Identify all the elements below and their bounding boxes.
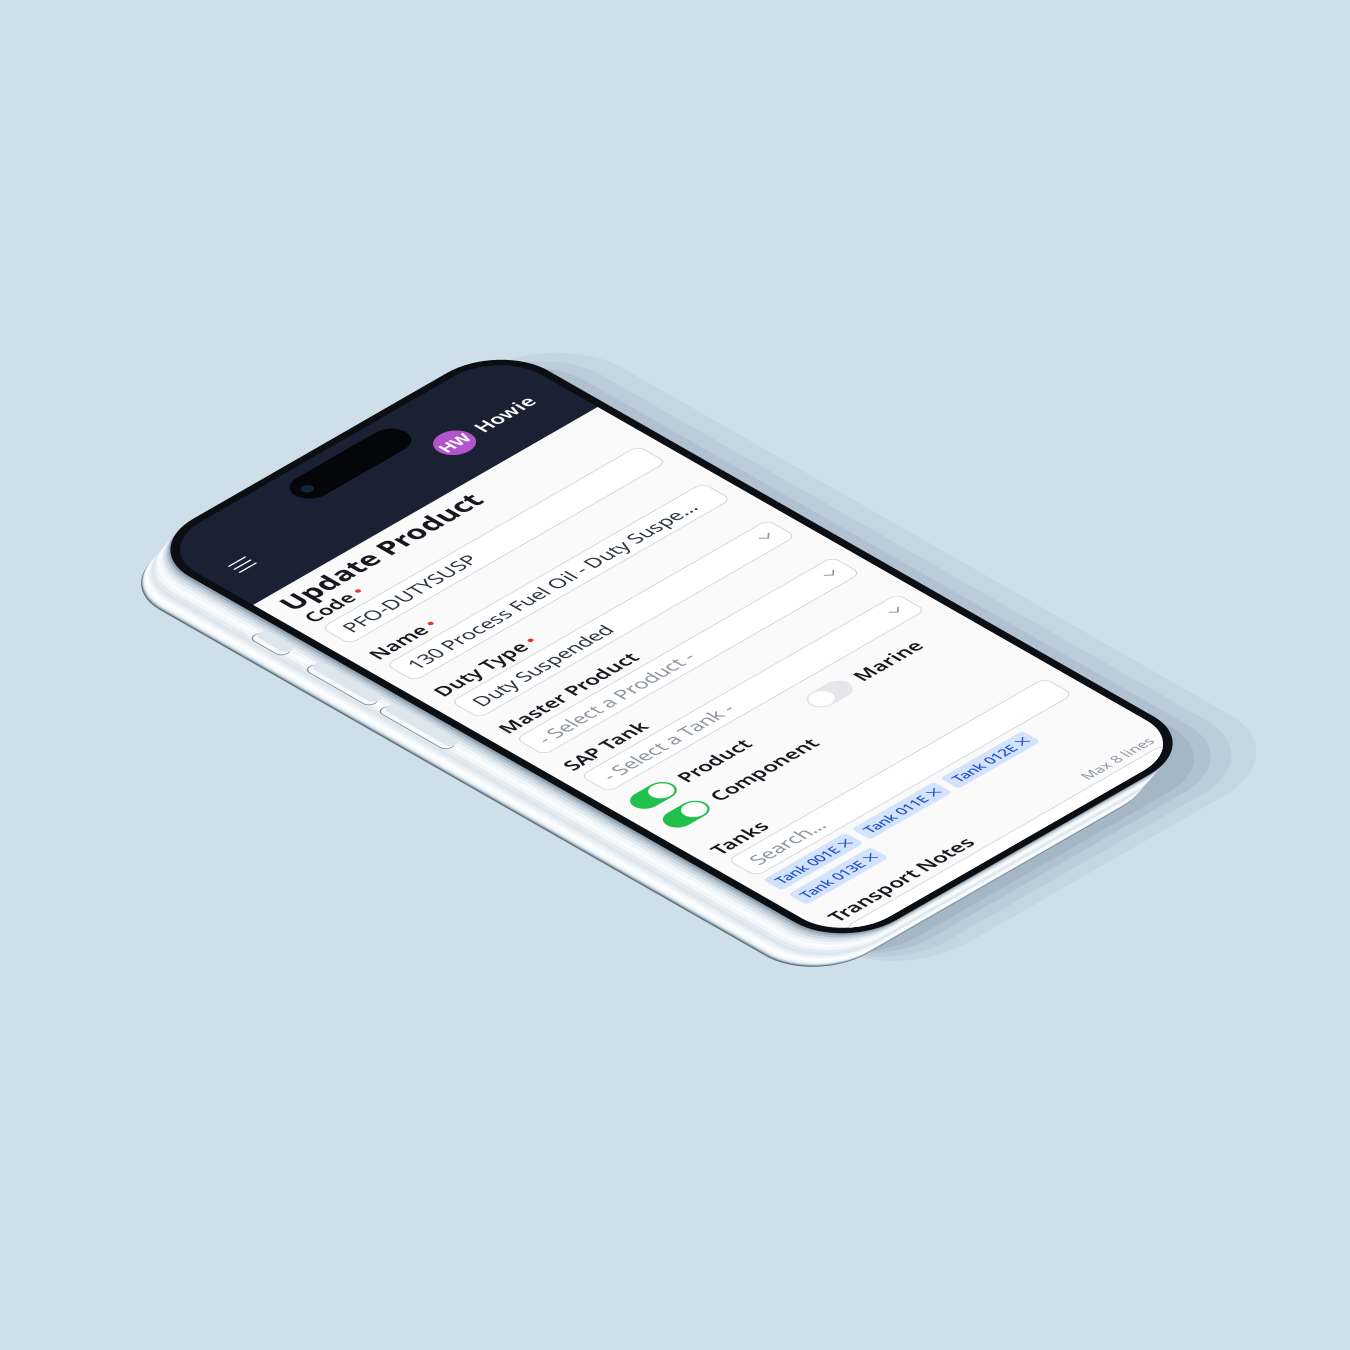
button[interactable]: Component xyxy=(16,603,184,629)
staticText: Marine xyxy=(270,562,341,589)
button[interactable]: - Select a Product - xyxy=(16,429,377,464)
button[interactable]: - Select a Tank - xyxy=(16,509,377,544)
button[interactable]: Product xyxy=(16,562,145,589)
staticText: Component xyxy=(69,603,184,629)
button[interactable]: Marine xyxy=(217,562,341,589)
button[interactable]: Search... xyxy=(16,691,377,726)
staticText: Product xyxy=(69,562,145,589)
